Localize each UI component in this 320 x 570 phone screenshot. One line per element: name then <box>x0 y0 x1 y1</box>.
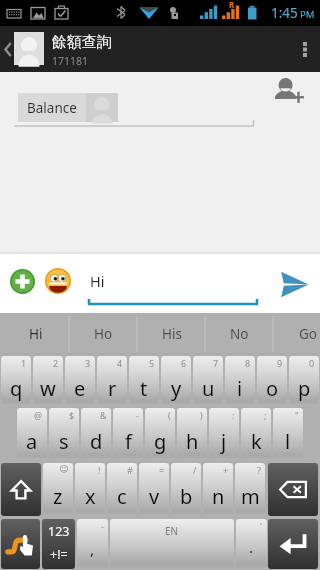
staticText: His <box>162 325 182 343</box>
button[interactable]: + <box>203 463 233 516</box>
button[interactable]: Space <box>110 519 234 569</box>
button[interactable]: / <box>171 463 201 516</box>
staticText: m <box>241 483 260 510</box>
button[interactable]: More options <box>290 26 320 72</box>
staticText: & <box>100 409 107 421</box>
button[interactable]: Send <box>272 262 316 306</box>
staticText: q <box>10 375 23 402</box>
button[interactable]: Enter <box>268 519 318 569</box>
staticText: No <box>230 325 249 343</box>
staticText: s <box>59 428 69 455</box>
button[interactable]: - <box>113 408 143 460</box>
staticText: Go <box>299 325 317 343</box>
button[interactable]: - <box>77 519 108 569</box>
button[interactable]: Hi <box>2 313 69 355</box>
staticText: w <box>40 375 56 402</box>
staticText: - <box>136 409 139 421</box>
staticText: e <box>74 375 86 402</box>
button[interactable]: Attach <box>10 269 35 294</box>
staticText: Hi <box>90 271 105 291</box>
staticText: R <box>229 0 235 10</box>
staticText: l <box>285 428 291 455</box>
staticText: ; <box>264 409 267 421</box>
button[interactable]: 8 <box>225 356 255 406</box>
button[interactable]: & <box>81 408 111 460</box>
button[interactable]: ? <box>235 463 265 516</box>
button[interactable]: Ho <box>70 313 137 355</box>
button[interactable]: ! <box>75 463 105 516</box>
staticText: v <box>149 483 160 510</box>
button[interactable]: : <box>209 408 239 460</box>
button[interactable]: Gesture input <box>1 519 40 569</box>
button[interactable]: Shift <box>1 463 41 516</box>
button[interactable]: $ <box>49 408 79 460</box>
staticText: d <box>90 428 103 455</box>
staticText: 171181 <box>52 54 89 68</box>
button[interactable]: 5 <box>129 356 159 406</box>
staticText: 9 <box>277 357 283 369</box>
staticText: 2 <box>53 357 59 369</box>
button[interactable]: Balance <box>18 93 118 122</box>
staticText: - <box>101 520 104 532</box>
button[interactable]: 9 <box>257 356 287 406</box>
staticText: ' <box>260 520 263 532</box>
button[interactable]: ' <box>236 519 267 569</box>
button[interactable]: " <box>273 408 303 460</box>
staticText: PM <box>300 8 315 21</box>
button[interactable]: ☺ <box>43 463 73 516</box>
button[interactable]: 0 <box>289 356 319 406</box>
staticText: o <box>266 375 279 402</box>
button[interactable]: ; <box>241 408 271 460</box>
button[interactable]: Go <box>274 313 320 355</box>
staticText: + <box>223 464 229 476</box>
staticText: Ho <box>94 325 113 343</box>
button[interactable]: Symbols <box>42 519 75 569</box>
staticText: Balance <box>27 99 77 117</box>
button[interactable]: 4 <box>97 356 127 406</box>
button[interactable]: Backspace <box>268 463 318 516</box>
staticText: EN <box>165 524 179 538</box>
button[interactable]: = <box>139 463 169 516</box>
button[interactable]: 1 <box>1 356 31 406</box>
button[interactable]: @ <box>17 408 47 460</box>
staticText: 5 <box>149 357 155 369</box>
button[interactable]: His <box>138 313 205 355</box>
staticText: 6 <box>181 357 187 369</box>
button[interactable]: Emoji <box>45 268 71 294</box>
button[interactable]: ) <box>177 408 207 460</box>
staticText: @ <box>34 409 43 421</box>
staticText: h <box>186 428 199 455</box>
staticText: ) <box>200 409 203 421</box>
staticText: : <box>232 409 235 421</box>
staticText: i <box>237 375 243 402</box>
staticText: n <box>212 483 225 510</box>
staticText: ! <box>98 464 101 476</box>
staticText: 1 <box>21 357 27 369</box>
button[interactable]: Add person <box>270 72 306 108</box>
button[interactable]: Back <box>0 26 15 72</box>
staticText: a <box>26 428 38 455</box>
staticText: ? <box>257 464 261 476</box>
button[interactable]: 3 <box>65 356 95 406</box>
staticText: k <box>251 428 262 455</box>
button[interactable]: 2 <box>33 356 63 406</box>
button[interactable]: 6 <box>161 356 191 406</box>
staticText: 0 <box>309 357 315 369</box>
staticText: c <box>117 483 127 510</box>
staticText: ☺ <box>59 464 69 474</box>
staticText: r <box>108 375 117 402</box>
staticText: j <box>221 428 227 455</box>
staticText: 4 <box>117 357 123 369</box>
button[interactable]: # <box>107 463 137 516</box>
button[interactable]: No <box>206 313 273 355</box>
staticText: 7 <box>213 357 219 369</box>
staticText: f <box>125 428 132 455</box>
button[interactable]: 7 <box>193 356 223 406</box>
button[interactable]: ( <box>145 408 175 460</box>
staticText: / <box>193 464 197 476</box>
staticText: g <box>154 428 167 455</box>
staticText: x <box>85 483 96 510</box>
staticText: p <box>298 375 311 402</box>
staticText: $ <box>69 409 75 421</box>
staticText: 餘額查詢 <box>52 33 112 52</box>
